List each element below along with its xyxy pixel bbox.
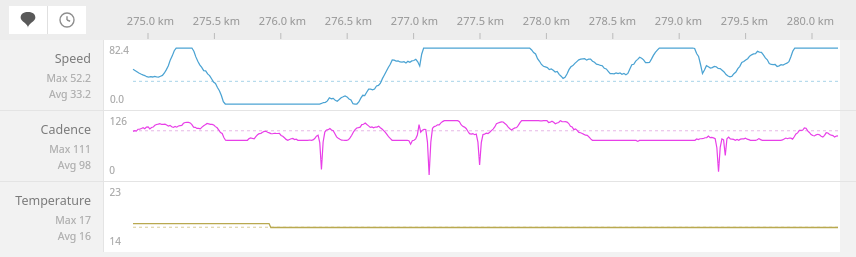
staticText: 0: [109, 163, 115, 177]
staticText: 277.5 km: [456, 13, 504, 28]
staticText: Cadence: [40, 121, 91, 138]
staticText: 279.0 km: [654, 13, 702, 28]
staticText: Max 17: [55, 213, 91, 227]
staticText: 82.4: [109, 43, 129, 57]
staticText: 0.0: [109, 92, 124, 106]
button[interactable]: Temperature: [0, 182, 856, 252]
staticText: Avg 33.2: [48, 87, 91, 101]
staticText: 275.0 km: [126, 13, 174, 28]
staticText: Temperature: [15, 192, 91, 209]
staticText: 126: [109, 114, 127, 128]
staticText: Speed: [54, 50, 91, 67]
staticText: 276.0 km: [258, 13, 306, 28]
button[interactable]: Map: [9, 6, 47, 34]
button[interactable]: Speed: [0, 40, 856, 110]
staticText: Max 111: [49, 142, 91, 156]
staticText: 14: [109, 234, 121, 248]
staticText: Max 52.2: [46, 71, 91, 85]
staticText: 275.5 km: [192, 13, 240, 28]
staticText: Avg 16: [57, 229, 91, 243]
button[interactable]: Cadence: [0, 111, 856, 181]
staticText: Avg 98: [57, 158, 91, 172]
staticText: 277.0 km: [390, 13, 438, 28]
staticText: 278.0 km: [522, 13, 570, 28]
staticText: 278.5 km: [588, 13, 636, 28]
button[interactable]: Time: [48, 6, 86, 34]
staticText: 279.5 km: [720, 13, 768, 28]
staticText: 276.5 km: [324, 13, 372, 28]
staticText: 280.0 km: [786, 13, 834, 28]
staticText: 23: [109, 185, 121, 199]
